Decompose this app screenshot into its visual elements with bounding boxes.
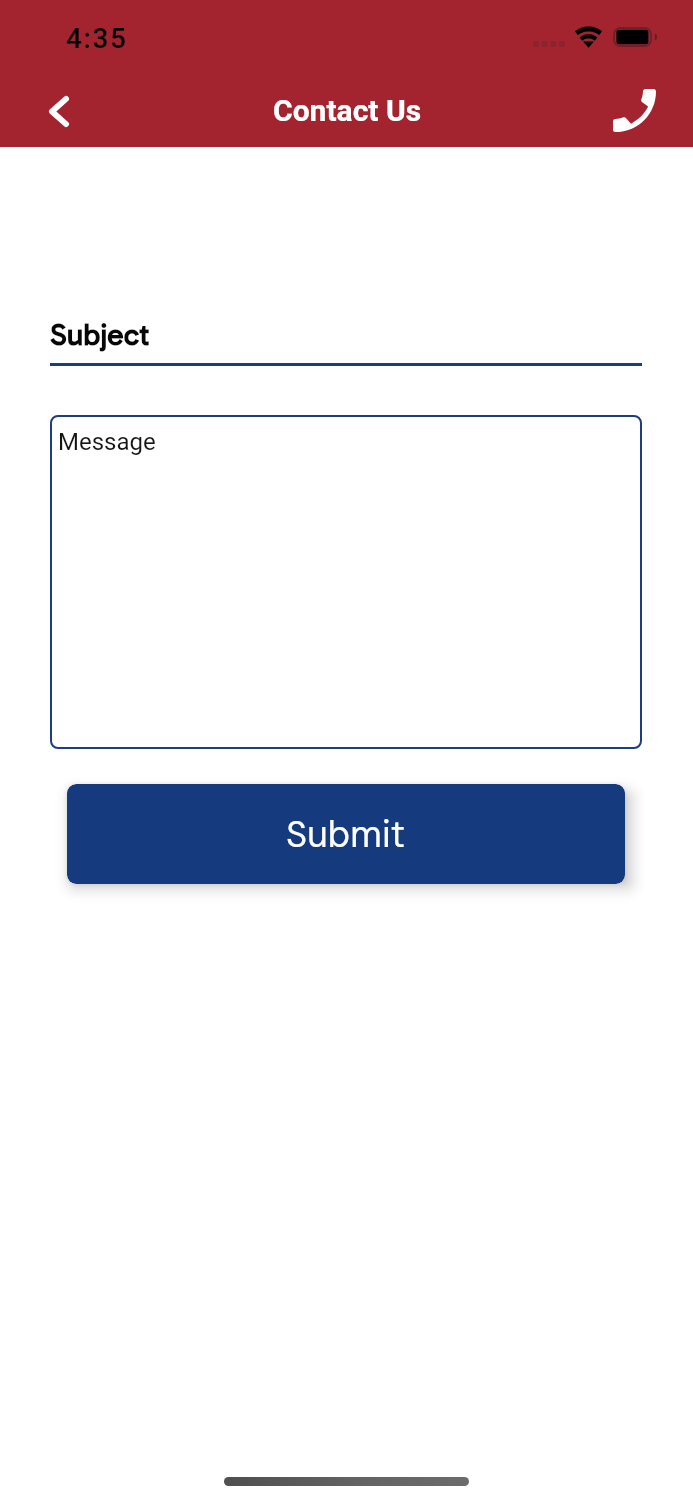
button[interactable]: Back [25,77,93,145]
staticText: Message [58,428,156,456]
button[interactable]: Submit [67,784,625,884]
button[interactable]: Message [50,415,642,749]
staticText: Submit [286,811,406,858]
staticText: 4:35 [66,22,128,55]
button[interactable]: Call [613,89,656,132]
staticText: Subject [50,317,150,353]
staticText: Contact Us [273,93,422,128]
